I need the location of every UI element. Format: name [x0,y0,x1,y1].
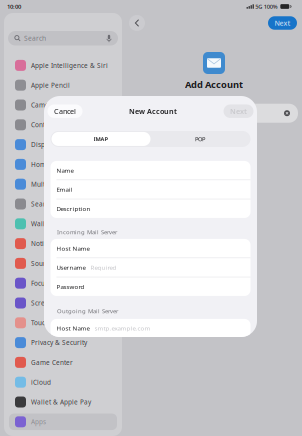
button[interactable]: Focus [2,273,124,293]
staticText: Apple Intelligence & Siri [31,61,108,70]
staticText: 5G [255,3,262,10]
button[interactable]: Apple Pencil [2,75,124,95]
button[interactable]: Next [268,16,297,30]
staticText: Host Name [56,244,89,252]
staticText: 100% [264,3,278,10]
staticText: Home [31,160,50,169]
button[interactable]: Privacy & Security [2,333,124,352]
staticText: Notifications [31,239,70,248]
button[interactable]: Touch ID [2,313,124,333]
staticText: Required [90,263,116,272]
staticText: Privacy & Security [31,338,87,347]
button[interactable]: Search [8,31,118,45]
staticText: Game Center [31,358,73,367]
staticText: Cancel [54,106,76,116]
staticText: Search [31,200,53,208]
staticText: Camera [31,101,56,109]
staticText: iCloud [31,378,51,386]
staticText: Description [56,204,90,213]
staticText: Control Center [31,120,77,129]
staticText: New Account [129,106,177,116]
button[interactable]: iCloud [2,372,124,392]
staticText: Next [274,18,290,28]
button[interactable]: Wallpaper [2,214,124,234]
button[interactable]: Game Center [2,352,124,372]
staticText: Screen Time [31,299,71,307]
button[interactable]: Apple Intelligence & Siri [2,55,124,75]
staticText: Username [56,263,85,272]
staticText: 10:00 [7,2,21,10]
staticText: Touch ID [31,318,58,327]
staticText: Incoming Mail Server [57,228,117,236]
staticText: Next [230,106,247,116]
staticText: Apple Pencil [31,81,70,89]
button[interactable]: Sounds [2,253,124,273]
staticText: Focus [31,279,48,287]
staticText: Apps [31,417,46,426]
button[interactable]: Control Center [2,115,124,135]
button[interactable]: Next [223,104,253,118]
button[interactable]: Multitasking [2,174,124,194]
button[interactable]: Back [129,15,145,31]
staticText: Sounds [31,259,54,268]
staticText: Search [24,34,46,43]
staticText: Password [56,282,84,291]
button[interactable]: Screen Time [2,293,124,313]
staticText: Outgoing Mail Server [57,307,118,315]
button[interactable]: Display [2,135,124,154]
staticText: Wallpaper [31,219,64,228]
button[interactable]: IMAP [51,132,150,146]
staticText: Wallet & Apple Pay [31,398,91,406]
button[interactable]: Apps [2,412,124,432]
staticText: POP [195,135,205,143]
button[interactable]: Camera [2,95,124,115]
button[interactable]: Search [2,194,124,214]
staticText: Email [56,185,72,194]
button[interactable]: Wallet & Apple Pay [2,392,124,412]
staticText: Add Account [185,78,243,91]
staticText: smtp.example.com [94,324,150,332]
staticText: Host Name [56,324,89,332]
staticText: Name [56,166,73,174]
button[interactable]: POP [150,132,249,146]
button[interactable]: Cancel [47,104,82,118]
staticText: Required [142,126,168,134]
staticText: Multitasking [31,180,69,188]
staticText: IMAP [93,135,108,143]
staticText: Display [31,140,54,149]
button[interactable]: Notifications [2,234,124,253]
button[interactable]: Home [2,154,124,174]
